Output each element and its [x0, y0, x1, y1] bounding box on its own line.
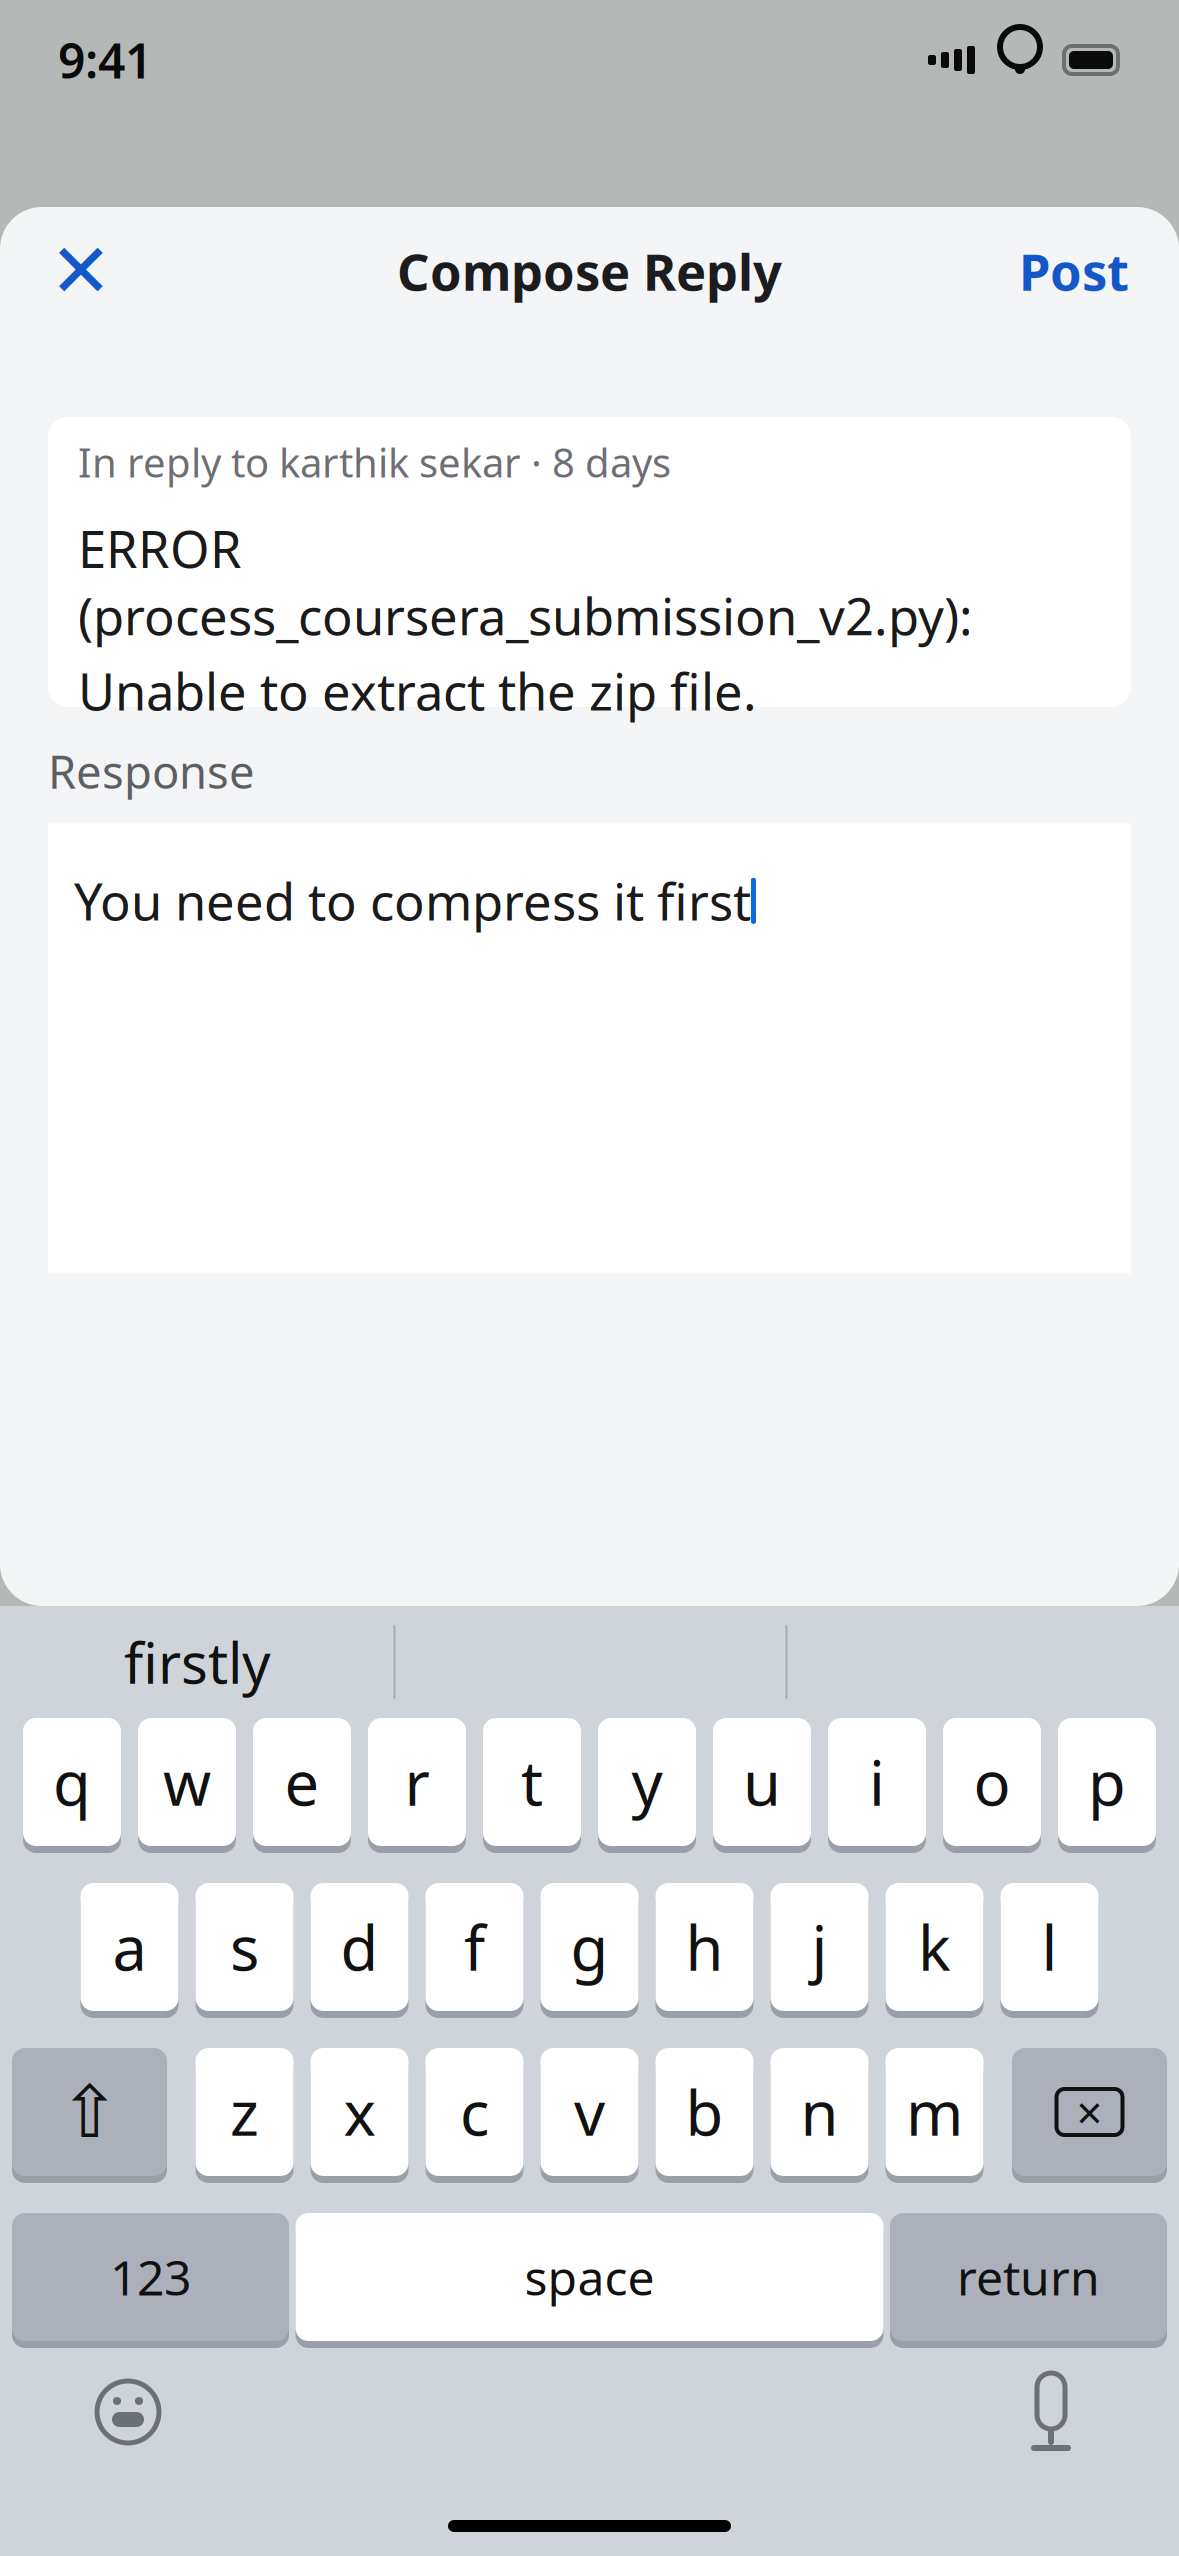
button[interactable]: q [23, 1718, 121, 1853]
staticText: firstly [124, 1625, 271, 1699]
button[interactable]: firstly [1, 1610, 393, 1714]
button[interactable]: j [770, 1883, 868, 2018]
staticText: k [918, 1906, 951, 1988]
staticText: ✕ [49, 229, 112, 313]
button[interactable]: Dictate [1001, 2362, 1101, 2462]
button[interactable]: t [483, 1718, 581, 1853]
staticText: u [743, 1741, 781, 1823]
staticText: v [574, 2071, 605, 2153]
staticText: ⇧ [59, 2071, 119, 2153]
staticText: j [811, 1906, 827, 1988]
staticText: p [1088, 1741, 1126, 1823]
staticText: r [404, 1741, 429, 1823]
button[interactable]: space [295, 2213, 883, 2348]
staticText: w [163, 1741, 211, 1823]
button[interactable]: Post [1007, 228, 1141, 314]
staticText: n [800, 2071, 838, 2153]
button[interactable]: Shift [12, 2048, 167, 2183]
staticText: You need to compress it first [74, 867, 751, 934]
staticText: b [685, 2071, 723, 2153]
button[interactable]: d [310, 1883, 408, 2018]
button[interactable]: c [425, 2048, 523, 2183]
staticText: In reply to karthik sekar · 8 days [78, 435, 671, 489]
staticText: y [631, 1741, 662, 1823]
staticText: d [340, 1906, 378, 1988]
staticText: l [1041, 1906, 1057, 1988]
button[interactable]: z [195, 2048, 293, 2183]
staticText: c [460, 2071, 489, 2153]
button[interactable]: h [655, 1883, 753, 2018]
button[interactable]: m [885, 2048, 983, 2183]
staticText: ERROR (process_coursera_submission_v2.py… [78, 515, 973, 649]
button[interactable]: k [885, 1883, 983, 2018]
staticText: return [957, 2245, 1100, 2309]
button[interactable]: Close [38, 228, 124, 314]
staticText: Unable to extract the zip file. [78, 657, 757, 724]
staticText: i [869, 1741, 885, 1823]
button[interactable]: l [1000, 1883, 1098, 2018]
staticText: Compose Reply [397, 237, 782, 305]
button[interactable]: y [598, 1718, 696, 1853]
button[interactable]: g [540, 1883, 638, 2018]
staticText: × [1076, 2082, 1102, 2142]
button[interactable]: return [890, 2213, 1167, 2348]
button[interactable]: f [425, 1883, 523, 2018]
staticText: x [343, 2071, 375, 2153]
staticText: Response [48, 741, 255, 801]
button[interactable]: a [80, 1883, 178, 2018]
button[interactable]: r [368, 1718, 466, 1853]
button[interactable]: n [770, 2048, 868, 2183]
button[interactable]: p [1058, 1718, 1156, 1853]
staticText: o [973, 1741, 1010, 1823]
button[interactable]: s [195, 1883, 293, 2018]
button[interactable]: u [713, 1718, 811, 1853]
button[interactable]: v [540, 2048, 638, 2183]
button[interactable]: b [655, 2048, 753, 2183]
staticText: 9:41 [58, 28, 152, 92]
staticText: g [570, 1906, 608, 1988]
button[interactable]: 123 [12, 2213, 289, 2348]
staticText: Post [1019, 237, 1129, 305]
button[interactable]: i [828, 1718, 926, 1853]
staticText: a [112, 1906, 146, 1988]
button[interactable]: e [253, 1718, 351, 1853]
staticText: e [284, 1741, 319, 1823]
staticText: t [521, 1741, 543, 1823]
staticText: f [464, 1906, 485, 1988]
staticText: z [230, 2071, 259, 2153]
staticText: s [230, 1906, 259, 1988]
button[interactable]: x [310, 2048, 408, 2183]
button[interactable]: Delete [1012, 2048, 1167, 2183]
staticText: 123 [110, 2245, 191, 2309]
button[interactable]: Emoji [78, 2362, 178, 2462]
staticText: h [685, 1906, 723, 1988]
staticText: space [524, 2245, 654, 2309]
button[interactable]: w [138, 1718, 236, 1853]
staticText: m [906, 2071, 963, 2153]
button[interactable]: o [943, 1718, 1041, 1853]
staticText: q [53, 1741, 91, 1823]
